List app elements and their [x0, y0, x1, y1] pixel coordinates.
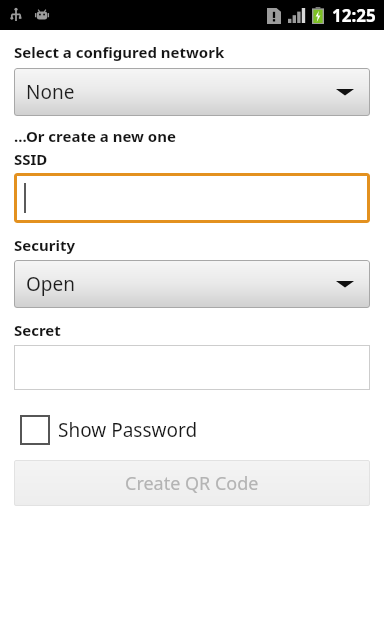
button[interactable]: None: [14, 68, 370, 116]
staticText: None: [26, 79, 75, 105]
staticText: SSID: [14, 149, 48, 169]
staticText: Security: [14, 235, 75, 255]
staticText: Open: [26, 271, 75, 297]
button[interactable]: Open: [14, 260, 370, 308]
staticText: Secret: [14, 320, 61, 340]
button[interactable]: Show Password: [20, 415, 198, 445]
staticText: ...Or create a new one: [14, 126, 176, 146]
other: USB connected: [8, 7, 24, 23]
staticText: Select a configured network: [14, 42, 225, 62]
other: USB debugging: [34, 7, 50, 23]
staticText: 12:25: [332, 4, 376, 27]
button[interactable]: Create QR Code: [14, 460, 370, 506]
button[interactable]: [14, 173, 370, 223]
staticText: Show Password: [58, 417, 198, 443]
button[interactable]: [14, 345, 370, 390]
staticText: Create QR Code: [125, 471, 259, 496]
